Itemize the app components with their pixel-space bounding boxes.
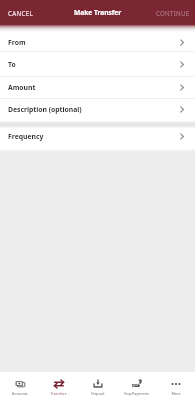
button[interactable]: Deposit <box>78 372 117 400</box>
staticText: Transfers <box>50 391 67 396</box>
button[interactable]: Frequency <box>0 128 195 149</box>
button[interactable]: Transfers <box>39 372 78 400</box>
button[interactable]: Description (optional) <box>0 99 195 121</box>
other: Stop Payments <box>132 379 142 389</box>
button[interactable]: CANCEL <box>0 0 41 25</box>
staticText: CANCEL <box>8 9 33 17</box>
staticText: From <box>8 38 26 47</box>
staticText: Deposit <box>91 391 105 396</box>
other: More <box>171 379 181 389</box>
other: Accounts <box>15 379 25 389</box>
staticText: StopPayments <box>124 391 149 396</box>
staticText: Accounts <box>12 391 28 396</box>
staticText: To <box>8 60 16 69</box>
staticText: More <box>171 391 181 396</box>
staticText: CONTINUE <box>156 9 190 17</box>
button[interactable]: To <box>0 52 195 77</box>
button[interactable]: Stop Payments <box>117 372 156 400</box>
staticText: Make Transfer <box>74 8 122 17</box>
other: Deposit <box>93 379 103 389</box>
button[interactable]: From <box>0 25 195 52</box>
button[interactable]: Accounts <box>0 372 39 400</box>
button[interactable]: CONTINUE <box>151 0 195 25</box>
staticText: Description (optional) <box>8 105 82 114</box>
button[interactable]: More <box>156 372 195 400</box>
button[interactable]: Amount <box>0 77 195 99</box>
staticText: Frequency <box>8 132 44 141</box>
other: Transfers <box>54 379 64 389</box>
staticText: Amount <box>8 83 36 92</box>
